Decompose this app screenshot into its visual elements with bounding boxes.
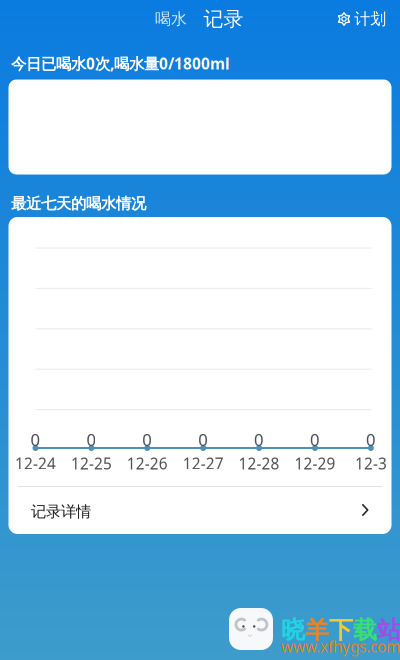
button[interactable]: 记录: [195, 5, 251, 33]
staticText: 计划: [354, 9, 386, 29]
staticText: 12-26: [127, 453, 168, 474]
button[interactable]: 计划: [333, 6, 391, 32]
staticText: 12-24: [15, 453, 56, 474]
staticText: 12-27: [183, 453, 224, 474]
staticText: 12-25: [71, 453, 112, 474]
staticText: 0: [198, 428, 208, 451]
staticText: 羊: [305, 615, 329, 645]
staticText: 站: [377, 615, 400, 645]
staticText: 喝水: [155, 9, 187, 29]
staticText: 0: [254, 428, 264, 451]
staticText: 0: [142, 428, 152, 451]
staticText: 今日已喝水0次,喝水量0/1800ml: [11, 53, 230, 74]
button[interactable]: 记录详情: [8, 486, 391, 534]
staticText: 载: [353, 615, 377, 645]
staticText: 12-3: [355, 453, 387, 474]
staticText: 记录: [203, 6, 243, 32]
staticText: 0: [310, 428, 320, 451]
staticText: 0: [366, 428, 376, 451]
staticText: 12-29: [294, 453, 335, 474]
button[interactable]: 喝水: [149, 6, 193, 32]
staticText: 12-28: [239, 453, 280, 474]
staticText: 下: [329, 615, 353, 645]
staticText: www.xfhygs.com: [281, 636, 400, 657]
staticText: 0: [86, 428, 96, 451]
staticText: 晓: [281, 615, 305, 645]
staticText: 最近七天的喝水情况: [11, 194, 146, 213]
staticText: 0: [30, 428, 40, 451]
staticText: 记录详情: [31, 502, 91, 521]
